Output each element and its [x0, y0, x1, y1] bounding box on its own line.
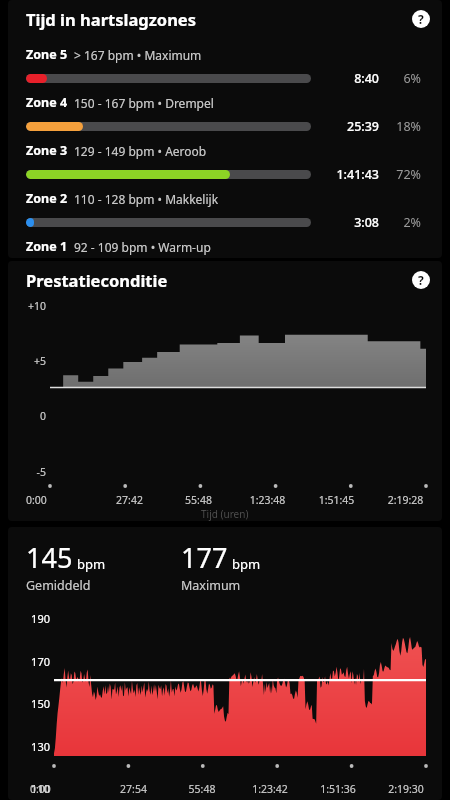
staticText: 130 [8, 739, 50, 754]
staticText: -5 [8, 465, 46, 479]
staticText: 1:51:36 [304, 782, 372, 796]
staticText: 0:00 [30, 782, 99, 796]
staticText: Zone 4 [26, 94, 68, 111]
staticText: Tijd (uren) [201, 507, 249, 521]
staticText: 177 [181, 539, 228, 576]
staticText: Zone 1 [26, 238, 68, 255]
button[interactable]: Help over prestatieconditie [408, 267, 434, 293]
staticText: > 167 bpm • Maximum [74, 47, 202, 63]
button[interactable]: Zone 3 [8, 137, 442, 185]
staticText: ? [418, 11, 424, 27]
staticText: 25:39 [311, 118, 379, 135]
staticText: 0:00 [26, 493, 95, 507]
staticText: 55:48 [168, 782, 236, 796]
staticText: 55:48 [164, 493, 233, 507]
staticText: bpm [77, 555, 106, 573]
staticText: 129 - 149 bpm • Aeroob [74, 143, 207, 159]
staticText: 3:08 [311, 214, 379, 231]
staticText: Zone 3 [26, 142, 68, 159]
staticText: 145 [26, 539, 73, 576]
staticText: +10 [8, 299, 46, 313]
staticText: 72% [379, 166, 421, 183]
staticText: +5 [8, 354, 46, 368]
staticText: 1:41:43 [311, 166, 379, 183]
staticText: Tijd in hartslagzones [26, 8, 196, 30]
staticText: 27:54 [99, 782, 168, 796]
staticText: 110 [8, 781, 50, 796]
staticText: Maximum [181, 577, 241, 594]
staticText: 110 - 128 bpm • Makkelijk [74, 191, 219, 207]
staticText: Gemiddeld [26, 577, 91, 594]
button[interactable]: Zone 2 [8, 185, 442, 233]
staticText: 1:23:48 [233, 493, 302, 507]
staticText: 6% [379, 70, 421, 87]
staticText: 190 [8, 611, 50, 626]
button[interactable]: Help over hartslagzones [408, 6, 434, 32]
staticText: Zone 2 [26, 190, 68, 207]
staticText: 2% [379, 214, 421, 231]
staticText: 1:23:42 [236, 782, 304, 796]
staticText: 170 [8, 654, 50, 669]
staticText: 2:19:28 [371, 493, 440, 507]
staticText: 150 [8, 696, 50, 711]
staticText: 2:19:30 [372, 782, 440, 796]
staticText: bpm [232, 555, 261, 573]
staticText: 18% [379, 118, 421, 135]
staticText: 27:42 [95, 493, 164, 507]
button[interactable]: Zone 5 [8, 41, 442, 89]
staticText: Zone 5 [26, 46, 68, 63]
staticText: 92 - 109 bpm • Warm-up [74, 239, 211, 255]
staticText: Prestatieconditie [26, 269, 168, 291]
staticText: 8:40 [311, 70, 379, 87]
button[interactable]: Zone 4 [8, 89, 442, 137]
staticText: 0 [8, 409, 46, 423]
staticText: 1:51:45 [302, 493, 371, 507]
button[interactable]: Zone 1 [8, 233, 442, 258]
staticText: 150 - 167 bpm • Drempel [74, 95, 214, 111]
staticText: ? [418, 272, 424, 288]
